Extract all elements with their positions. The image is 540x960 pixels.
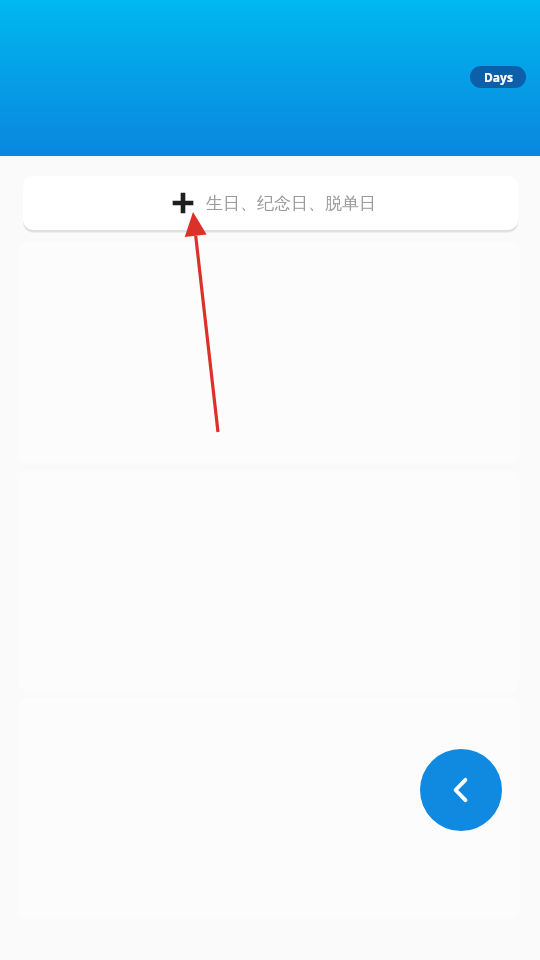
staticText: 生日、纪念日、脱单日 [206,193,376,214]
button[interactable]: Back [420,749,502,831]
button[interactable]: 生日、纪念日、脱单日 [23,176,518,230]
staticText: Days [484,69,513,85]
button[interactable]: Days [470,66,526,88]
